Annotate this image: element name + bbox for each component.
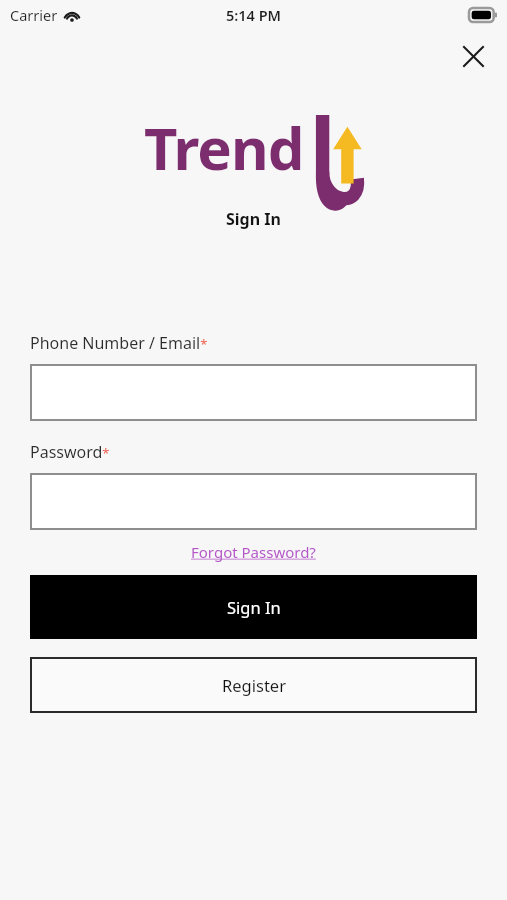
staticText: Phone Number / Email* [30, 332, 208, 354]
button[interactable] [30, 364, 477, 421]
button[interactable]: Forgot Password? [191, 542, 316, 562]
button[interactable]: Close [453, 36, 493, 76]
button[interactable]: Register [30, 657, 477, 713]
staticText: 5:14 PM [226, 5, 282, 25]
staticText: Trend [144, 108, 304, 187]
staticText: Carrier [10, 5, 58, 25]
staticText: Forgot Password? [191, 542, 316, 562]
staticText: Password* [30, 441, 110, 463]
staticText: Register [222, 674, 286, 696]
staticText: Sign In [227, 596, 281, 618]
staticText: Sign In [226, 208, 281, 230]
button[interactable]: Sign In [30, 575, 477, 639]
button[interactable] [30, 473, 477, 530]
